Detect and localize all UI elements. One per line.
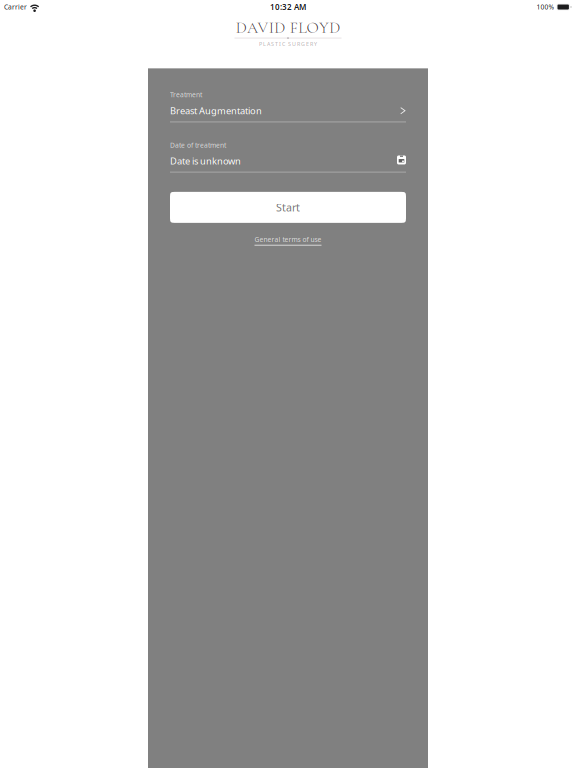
staticText: 100% xyxy=(537,3,555,11)
staticText: Start xyxy=(276,200,300,214)
staticText: 10:32 AM xyxy=(270,2,306,12)
button[interactable]: Start xyxy=(170,192,406,223)
button[interactable]: Date of treatment xyxy=(170,141,406,173)
button[interactable]: Treatment xyxy=(170,90,406,123)
staticText: Treatment xyxy=(170,90,202,99)
staticText: DAVID FLOYD xyxy=(236,18,340,37)
staticText: PLASTIC SURGERY xyxy=(259,40,317,47)
staticText: Date is unknown xyxy=(170,155,241,167)
button[interactable]: General terms of use xyxy=(170,235,406,246)
staticText: Breast Augmentation xyxy=(170,104,262,117)
staticText: General terms of use xyxy=(254,235,321,244)
staticText: Date of treatment xyxy=(170,141,226,149)
staticText: Carrier xyxy=(4,3,27,11)
